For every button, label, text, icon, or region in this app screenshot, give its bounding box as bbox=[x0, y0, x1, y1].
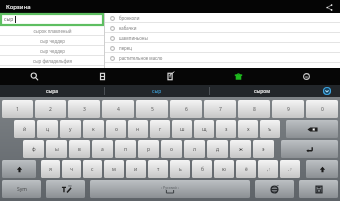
button[interactable]: 9 bbox=[272, 100, 304, 118]
button[interactable]: Recipes bbox=[68, 68, 136, 85]
button[interactable]: Language bbox=[255, 180, 294, 198]
button[interactable]: м bbox=[104, 160, 124, 178]
button[interactable]: у bbox=[60, 120, 81, 138]
button[interactable]: Symbols bbox=[2, 180, 41, 198]
button[interactable]: сыр bbox=[1, 14, 103, 25]
button[interactable]: ж bbox=[230, 140, 251, 158]
staticText: 3 bbox=[83, 106, 86, 113]
button[interactable]: сыр чеддер bbox=[0, 46, 104, 56]
button[interactable]: . bbox=[280, 160, 300, 178]
button[interactable]: Shift bbox=[2, 160, 36, 178]
button[interactable]: ш bbox=[172, 120, 192, 138]
staticText: ж bbox=[239, 146, 243, 153]
staticText: ф bbox=[32, 146, 36, 153]
button[interactable]: 2 bbox=[35, 100, 66, 118]
staticText: сыр филадельфия bbox=[33, 58, 72, 64]
button[interactable]: сырок плавленый bbox=[0, 26, 104, 36]
button[interactable]: б bbox=[192, 160, 212, 178]
button[interactable]: я bbox=[41, 160, 60, 178]
staticText: . bbox=[288, 166, 290, 172]
button[interactable]: л bbox=[184, 140, 205, 158]
button[interactable]: Input method bbox=[46, 180, 85, 198]
button[interactable]: р bbox=[138, 140, 159, 158]
button[interactable]: о bbox=[161, 140, 182, 158]
staticText: 7 bbox=[219, 106, 222, 113]
staticText: ц bbox=[46, 126, 50, 133]
staticText: сыр bbox=[152, 88, 162, 95]
button[interactable]: с bbox=[83, 160, 102, 178]
button[interactable]: ц bbox=[37, 120, 58, 138]
button[interactable]: э bbox=[253, 140, 274, 158]
staticText: х bbox=[247, 126, 250, 133]
staticText: 4 bbox=[117, 106, 120, 113]
button[interactable]: з bbox=[216, 120, 236, 138]
button[interactable]: More suggestions bbox=[314, 85, 340, 97]
button[interactable]: о bbox=[106, 120, 126, 138]
button[interactable]: Backspace bbox=[286, 120, 338, 138]
button[interactable]: ы bbox=[46, 140, 67, 158]
button[interactable]: сыр филадельфия bbox=[0, 56, 104, 66]
button[interactable]: н bbox=[128, 120, 148, 138]
staticText: и bbox=[134, 166, 138, 173]
button[interactable]: шампиньоны bbox=[105, 33, 340, 43]
staticText: д bbox=[216, 146, 220, 153]
button[interactable]: Cart bbox=[204, 68, 272, 85]
button[interactable]: д bbox=[207, 140, 228, 158]
staticText: , bbox=[267, 166, 269, 172]
button[interactable]: ю bbox=[214, 160, 234, 178]
staticText: растительное масло bbox=[119, 55, 163, 61]
button[interactable]: г bbox=[150, 120, 170, 138]
button[interactable]: брокколи bbox=[105, 13, 340, 23]
button[interactable]: 8 bbox=[238, 100, 270, 118]
button[interactable]: 7 bbox=[204, 100, 236, 118]
staticText: с bbox=[91, 166, 94, 173]
button[interactable]: 1 bbox=[2, 100, 33, 118]
button[interactable]: и bbox=[126, 160, 146, 178]
button[interactable]: , bbox=[258, 160, 278, 178]
button[interactable]: Search bbox=[0, 68, 68, 85]
button[interactable]: щ bbox=[194, 120, 214, 138]
button[interactable]: Profile bbox=[272, 68, 340, 85]
button[interactable]: т bbox=[148, 160, 168, 178]
staticText: ё bbox=[245, 166, 248, 173]
button[interactable]: ь bbox=[170, 160, 190, 178]
button[interactable]: сыром bbox=[210, 85, 314, 97]
button[interactable]: п bbox=[115, 140, 136, 158]
button[interactable]: Shift bbox=[306, 160, 338, 178]
button[interactable]: й bbox=[14, 120, 35, 138]
button[interactable]: 4 bbox=[102, 100, 134, 118]
button[interactable]: кабачки bbox=[105, 23, 340, 33]
button[interactable]: сыр чеддер bbox=[0, 36, 104, 46]
staticText: я bbox=[49, 166, 52, 173]
staticText: ь bbox=[179, 166, 182, 173]
button[interactable]: ё bbox=[236, 160, 256, 178]
staticText: г bbox=[159, 126, 162, 133]
button[interactable]: ч bbox=[62, 160, 81, 178]
button[interactable]: х bbox=[238, 120, 258, 138]
button[interactable]: растительное масло bbox=[105, 53, 340, 63]
button[interactable]: 0 bbox=[306, 100, 338, 118]
button[interactable]: Share bbox=[323, 1, 335, 13]
button[interactable]: ф bbox=[23, 140, 44, 158]
staticText: шампиньоны bbox=[119, 35, 148, 41]
button[interactable]: 3 bbox=[68, 100, 100, 118]
button[interactable]: сыра bbox=[0, 85, 104, 97]
button[interactable]: Enter bbox=[281, 140, 338, 158]
button[interactable]: 5 bbox=[136, 100, 168, 118]
staticText: кабачки bbox=[119, 25, 137, 31]
button[interactable]: 6 bbox=[170, 100, 202, 118]
staticText: 8 bbox=[253, 106, 256, 113]
button[interactable]: а bbox=[92, 140, 113, 158]
button[interactable]: ъ bbox=[260, 120, 280, 138]
button[interactable]: перец bbox=[105, 43, 340, 53]
button[interactable]: Space bbox=[90, 180, 250, 198]
button[interactable]: в bbox=[69, 140, 90, 158]
staticText: щ bbox=[202, 126, 207, 133]
button[interactable]: к bbox=[83, 120, 104, 138]
button[interactable]: Clipboard bbox=[299, 180, 338, 198]
staticText: 1 bbox=[16, 106, 19, 113]
staticText: 0 bbox=[321, 106, 324, 113]
staticText: 9 bbox=[287, 106, 290, 113]
button[interactable]: Notes bbox=[136, 68, 204, 85]
button[interactable]: сыр bbox=[105, 85, 209, 97]
